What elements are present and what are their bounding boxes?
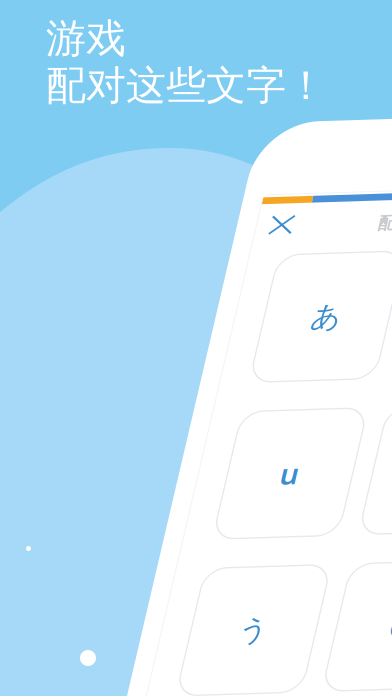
staticText: ka: [241, 666, 275, 696]
button[interactable]: あ: [49, 137, 175, 268]
button[interactable]: か: [49, 620, 175, 696]
button[interactable]: o: [195, 459, 321, 590]
button[interactable]: i: [195, 137, 321, 268]
button[interactable]: e: [195, 298, 321, 429]
button[interactable]: ka: [195, 620, 321, 696]
button[interactable]: う: [49, 459, 175, 590]
staticText: 配对这些文字: [142, 97, 244, 118]
staticText: e: [249, 344, 266, 383]
staticText: o: [249, 505, 267, 544]
staticText: 配对这些文字！: [46, 61, 326, 110]
button[interactable]: Close: [23, 86, 67, 126]
staticText: 游戏: [46, 14, 126, 63]
